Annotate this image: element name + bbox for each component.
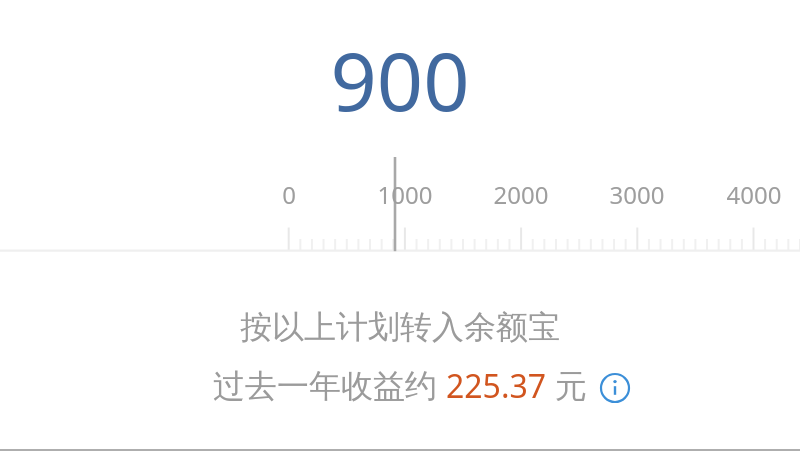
staticText: 0 [229, 178, 349, 211]
staticText: 3000 [577, 178, 697, 211]
staticText: 900 [0, 24, 800, 134]
staticText: 225.37 [446, 364, 547, 408]
staticText: 过去一年收益约 [213, 366, 437, 406]
button[interactable]: Amount ruler slider [0, 152, 800, 252]
staticText: 1000 [345, 178, 465, 211]
staticText: 4000 [694, 178, 800, 211]
staticText: 元 [555, 366, 587, 406]
button[interactable]: Info [600, 373, 630, 403]
staticText: 2000 [461, 178, 581, 211]
staticText: 按以上计划转入余额宝 [0, 307, 800, 347]
